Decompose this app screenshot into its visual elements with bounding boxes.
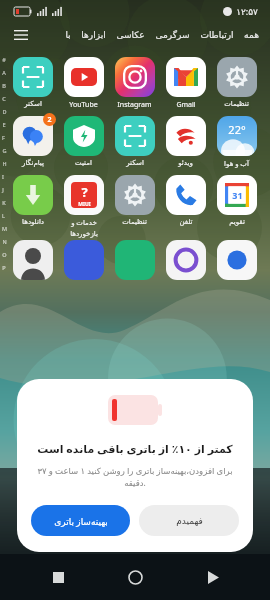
staticText: اسکنر [24,100,42,108]
staticText: امنیت [75,159,92,167]
button[interactable]: اسکنر [8,54,58,111]
staticText: همه [244,30,259,40]
staticText: 2 [47,115,52,125]
button[interactable]: ? [58,172,109,240]
staticText: پیام‌نگار [22,159,44,167]
staticText: ۱۲:۵۷ [236,5,258,17]
button[interactable]: سرگرمی [150,27,195,43]
button[interactable]: تنظیمات [109,172,160,229]
staticText: N [2,238,7,245]
button[interactable] [64,240,104,280]
button[interactable]: Instagram [109,54,160,113]
button[interactable]: امنیت [58,113,109,170]
staticText: آب و هوا [224,159,249,169]
staticText: بهینه‌ساز باتری [54,515,108,527]
staticText: خدمات و بازخوردها [70,218,98,237]
staticText: عکاسی [116,30,145,40]
staticText: P [2,264,6,271]
button[interactable]: همه [239,27,264,43]
button[interactable] [115,240,155,280]
staticText: L [2,212,5,219]
staticText: اسکنر [126,159,144,167]
button[interactable] [217,240,257,280]
staticText: E [2,121,6,128]
button[interactable]: تلفن [160,172,211,229]
staticText: K [2,199,6,206]
staticText: B [2,82,6,89]
button[interactable]: Menu [8,22,34,48]
button[interactable]: عکاسی [111,27,150,43]
staticText: J [2,186,4,193]
staticText: فهمیدم [176,516,203,526]
staticText: تلفن [179,218,193,226]
staticText: ? [81,183,88,201]
button[interactable]: بهینه‌ساز باتری [31,505,130,536]
staticText: I [2,173,4,180]
staticText: برای افزودن،بهینه‌ساز باتری را روشن کنید… [31,465,239,489]
button[interactable]: تنظیمات [211,54,262,111]
staticText: 22° [228,122,246,137]
staticText: H [2,160,7,167]
button[interactable]: 31 [211,172,262,229]
staticText: دانلودها [22,218,44,226]
staticText: # [2,56,6,63]
button[interactable]: Back [193,557,233,597]
button[interactable]: 22° [211,113,262,172]
staticText: F [2,134,5,141]
button[interactable]: فهمیدم [139,505,239,536]
button[interactable] [166,240,206,280]
button[interactable]: Home [115,557,155,597]
staticText: MIUI [78,201,91,208]
button[interactable]: Recents [38,557,78,597]
staticText: M [2,225,7,232]
staticText: ابزارها [81,30,106,40]
staticText: Instagram [117,100,152,110]
staticText: 31 [232,189,243,201]
button[interactable]: با [60,27,76,43]
button[interactable]: Gmail [160,54,211,113]
staticText: G [2,147,7,154]
staticText: تنظیمات [122,218,147,226]
staticText: D [2,108,7,115]
button[interactable] [13,240,53,280]
staticText: با [65,30,71,40]
staticText: O [2,251,7,258]
staticText: Gmail [176,100,196,110]
staticText: C [2,95,6,102]
staticText: تقویم [229,218,245,226]
staticText: ویدئو [178,159,193,167]
button[interactable]: دانلودها [8,172,58,229]
staticText: YouTube [69,100,98,110]
staticText: A [2,69,6,76]
button[interactable]: YouTube [58,54,109,113]
button[interactable]: 2 [8,113,58,170]
button[interactable]: ویدئو [160,113,211,170]
staticText: سرگرمی [155,30,190,40]
button[interactable]: ابزارها [76,27,111,43]
staticText: تنظیمات [224,100,249,108]
staticText: کمتر از ۱۰٪ از باتری باقی مانده است [37,441,233,456]
button[interactable]: اسکنر [109,113,160,170]
staticText: ارتباطات [200,30,234,40]
button[interactable]: ارتباطات [195,27,239,43]
